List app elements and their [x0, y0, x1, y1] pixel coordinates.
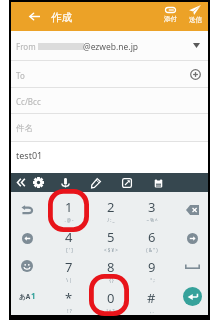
button[interactable]: Clipboard	[149, 173, 167, 192]
staticText: test01	[16, 149, 43, 161]
button[interactable]: 1	[48, 192, 90, 222]
button[interactable]: Expand	[118, 173, 136, 192]
staticText: . @ -	[64, 217, 74, 223]
staticText: 5	[107, 228, 115, 246]
button[interactable]: Previous	[12, 173, 30, 192]
button[interactable]: 3	[131, 192, 172, 222]
staticText: #	[147, 289, 156, 307]
staticText: [ ' ]	[66, 247, 73, 253]
staticText: *	[65, 289, 73, 307]
staticText: 0	[107, 289, 115, 307]
staticText: < $ ¥ >	[104, 247, 118, 253]
button[interactable]: From	[11, 31, 208, 60]
button[interactable]: *	[48, 282, 90, 315]
button[interactable]: 2	[90, 192, 131, 222]
button[interactable]: emoji	[6, 252, 48, 282]
staticText: ( & " )	[146, 247, 158, 253]
staticText: 3	[148, 198, 156, 216]
staticText: / : _	[107, 217, 115, 223]
staticText: 6	[148, 228, 156, 246]
button[interactable]: 添付	[155, 2, 185, 31]
button[interactable]: Add recipient	[189, 68, 202, 81]
staticText: 4	[65, 228, 73, 246]
button[interactable]: fwd	[172, 222, 213, 252]
button[interactable]: Back	[19, 2, 49, 31]
staticText: { }	[109, 277, 114, 283]
staticText: 添付	[164, 15, 177, 23]
staticText: 2	[107, 198, 115, 216]
button[interactable]: back	[6, 222, 48, 252]
button[interactable]: #	[131, 282, 172, 315]
staticText: ! ?	[67, 308, 72, 314]
button[interactable]: 6	[131, 222, 172, 252]
button[interactable]: 件名	[11, 114, 208, 141]
staticText: 1	[65, 198, 73, 216]
staticText: あA	[19, 292, 31, 301]
button[interactable]: 7	[48, 252, 90, 282]
staticText: 8	[107, 258, 115, 276]
staticText: 件名	[16, 123, 33, 134]
button[interactable]: space	[172, 252, 213, 282]
button[interactable]: Voice input	[56, 173, 74, 192]
staticText: 1	[31, 290, 36, 301]
button[interactable]: あA	[6, 282, 48, 315]
button[interactable]: 9	[131, 252, 172, 282]
button[interactable]: 送信	[180, 2, 210, 31]
button[interactable]: Enter	[183, 287, 202, 306]
button[interactable]: test01	[11, 142, 208, 173]
staticText: 作成	[51, 11, 72, 24]
button[interactable]: 0	[90, 282, 131, 315]
button[interactable]: undo	[6, 192, 48, 222]
staticText: 9	[148, 258, 156, 276]
staticText: ° ;	[150, 277, 155, 283]
button[interactable]: Settings	[29, 173, 47, 192]
staticText: Cc/Bcc	[16, 96, 41, 107]
button[interactable]: enter	[172, 282, 213, 315]
button[interactable]: Cc/Bcc	[11, 88, 208, 113]
staticText: @ezweb.ne.jp	[83, 41, 139, 53]
button[interactable]: 5	[90, 222, 131, 252]
staticText: 送信	[189, 16, 202, 24]
button[interactable]: Handwriting	[87, 173, 105, 192]
button[interactable]: 8	[90, 252, 131, 282]
staticText: To	[16, 70, 25, 81]
staticText: , .	[150, 308, 154, 314]
staticText: ~ % ^	[146, 217, 158, 223]
staticText: From	[16, 41, 36, 52]
button[interactable]: To	[11, 61, 208, 87]
button[interactable]: del	[172, 192, 213, 222]
staticText: 7	[65, 258, 73, 276]
staticText: \ |	[66, 277, 72, 283]
staticText: ! + ?	[106, 308, 115, 314]
button[interactable]: 4	[48, 222, 90, 252]
